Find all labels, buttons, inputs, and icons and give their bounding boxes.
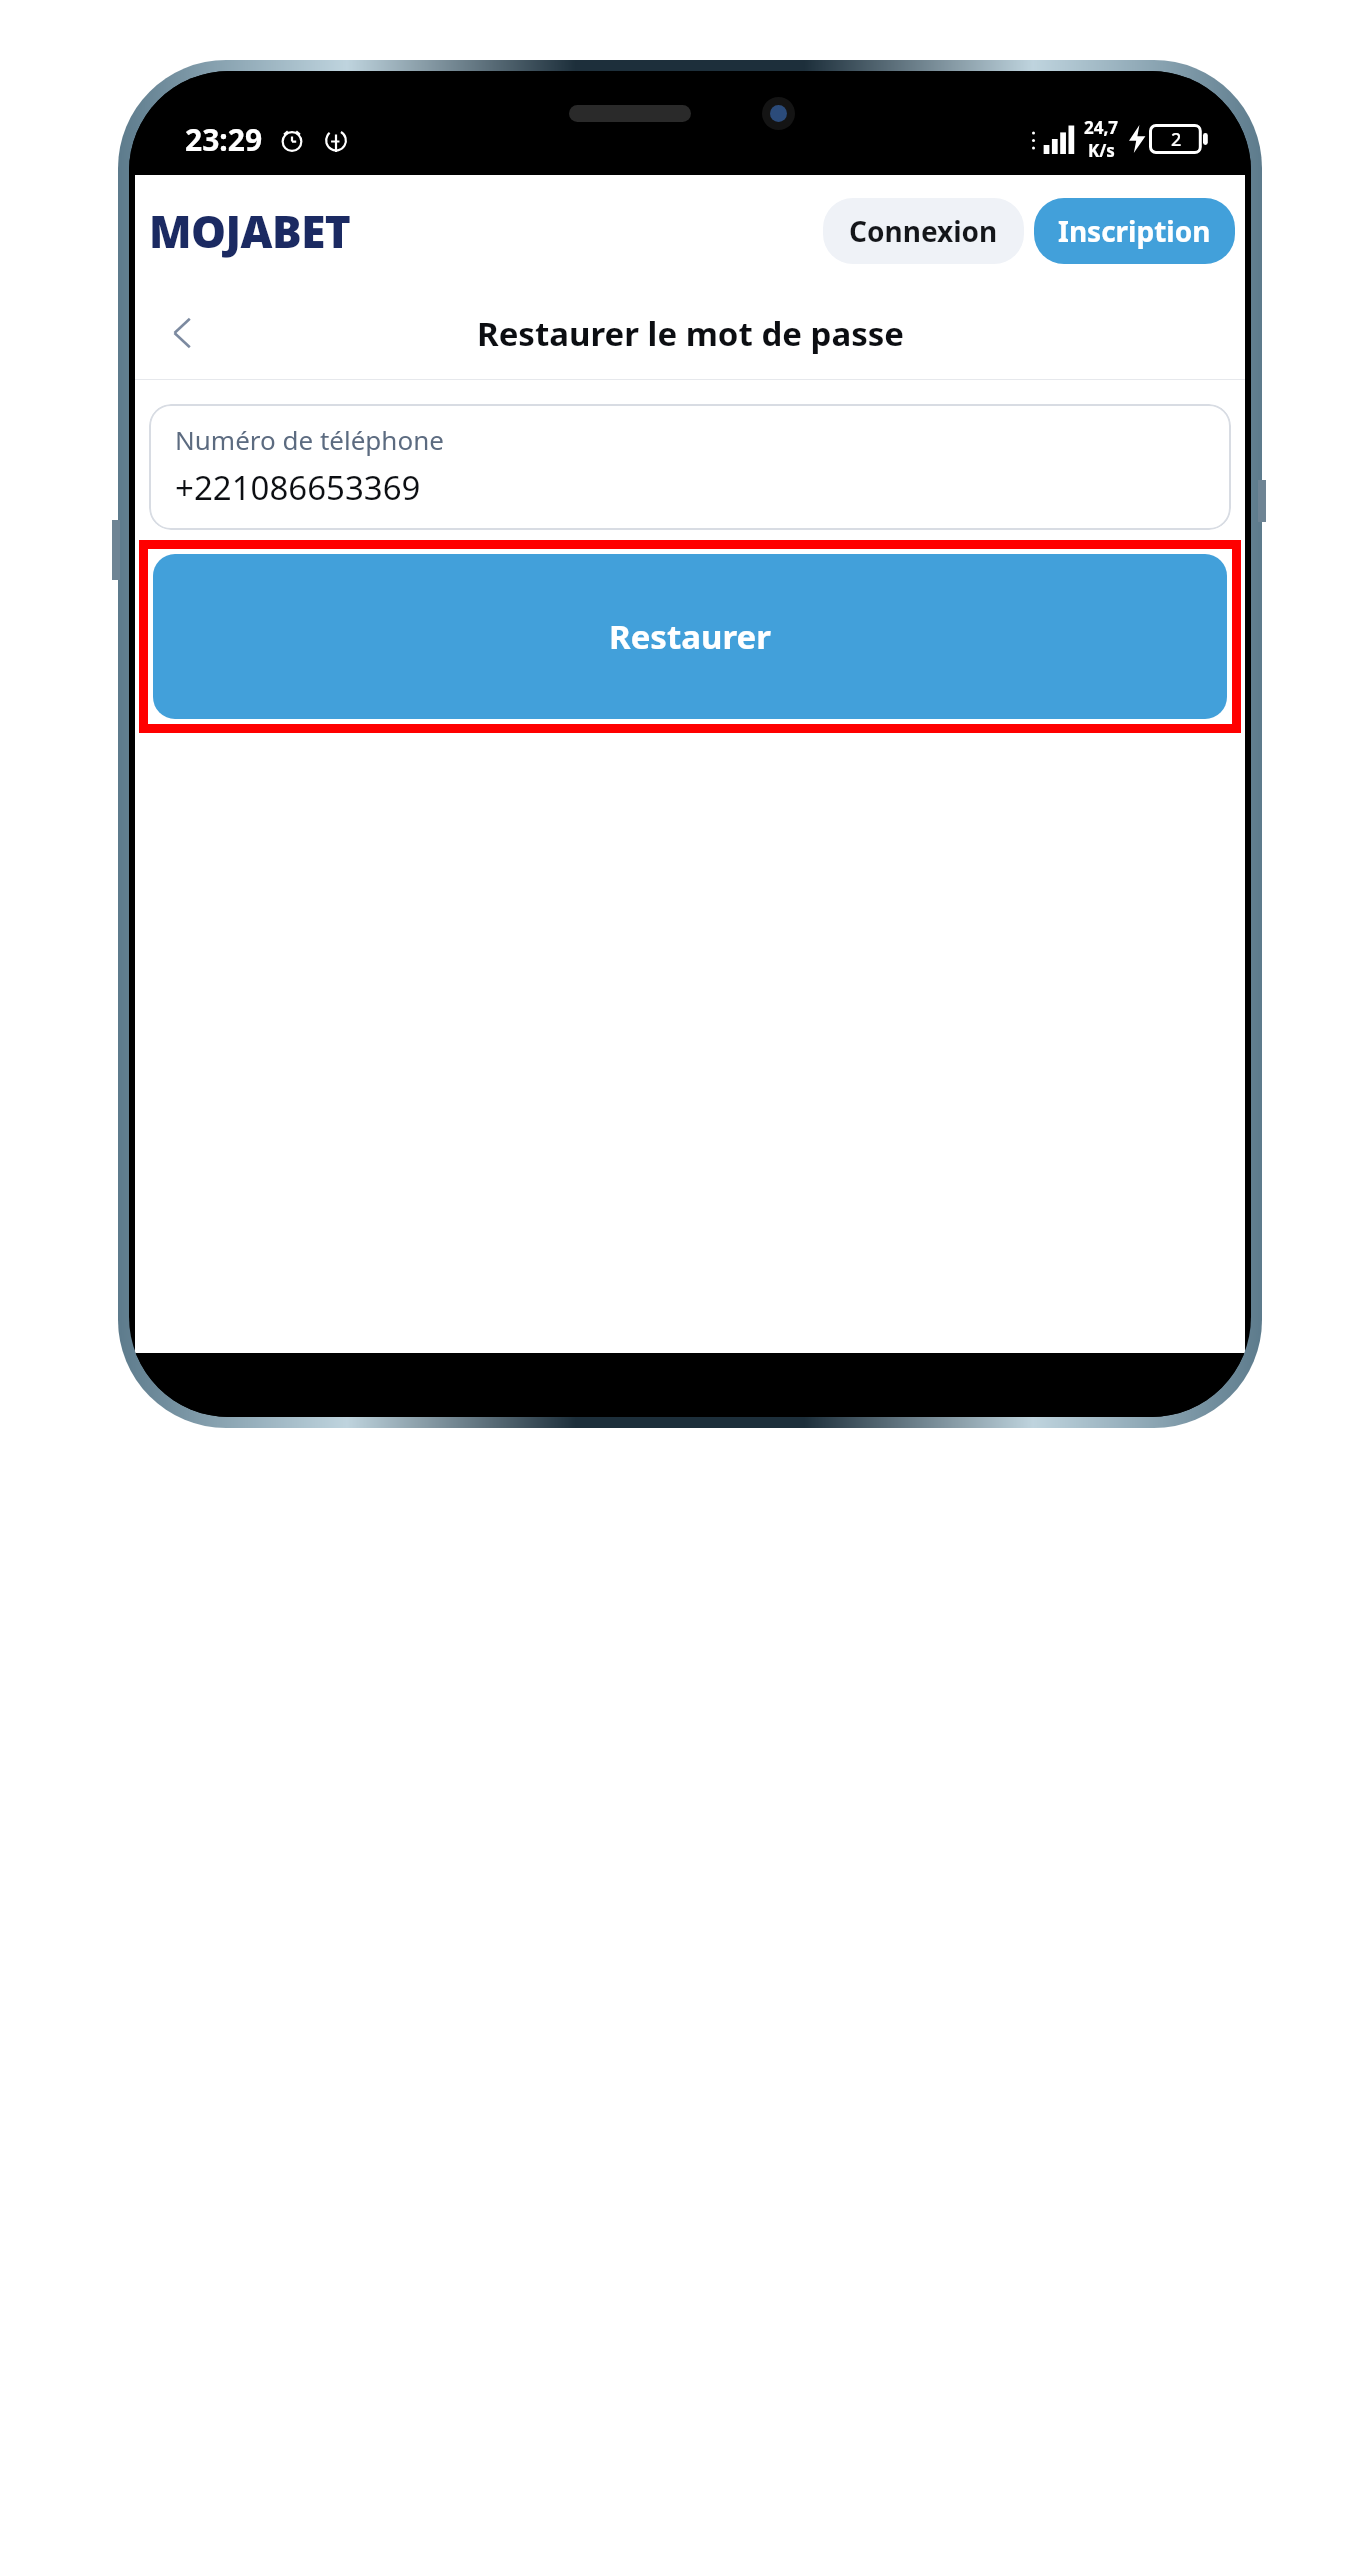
button[interactable]: Numéro de téléphone [149,404,1231,530]
staticText: Connexion [849,212,998,250]
staticText: Restaurer [609,614,771,659]
staticText: Numéro de téléphone [175,422,444,457]
button[interactable]: Inscription [1034,198,1235,264]
staticText: +221086653369 [175,465,421,510]
staticText: Restaurer le mot de passe [477,311,904,356]
staticText: 24,7 [1084,116,1119,139]
button[interactable]: Restaurer [153,554,1227,719]
staticText: 2 [1171,127,1182,152]
button[interactable]: Connexion [823,198,1024,264]
staticText: Inscription [1058,212,1211,250]
button[interactable]: Back [155,305,211,361]
button[interactable]: MOJABET [149,201,351,261]
staticText: 23:29 [185,119,263,160]
staticText: K/s [1088,139,1115,162]
